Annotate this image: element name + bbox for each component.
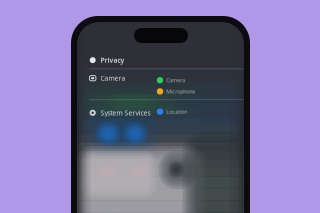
staticText: System Services xyxy=(100,108,150,117)
staticText: Microphone xyxy=(166,88,195,95)
staticText: Location xyxy=(166,108,187,115)
button[interactable]: Privacy xyxy=(77,50,243,70)
button[interactable]: System Services xyxy=(77,99,243,122)
staticText: Camera xyxy=(166,77,185,84)
staticText: Privacy xyxy=(100,56,124,65)
staticText: Camera xyxy=(100,74,125,83)
button[interactable]: Camera xyxy=(77,68,243,99)
